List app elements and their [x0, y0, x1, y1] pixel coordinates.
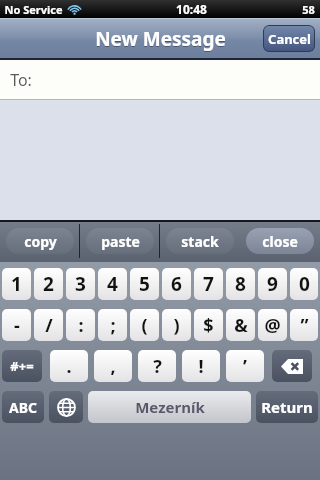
staticText: 7 [203, 271, 214, 297]
staticText: 2 [43, 271, 54, 297]
button[interactable]: @ [258, 309, 287, 341]
button[interactable]: stack [160, 224, 240, 258]
staticText: 3 [75, 271, 86, 297]
button[interactable]: Return [256, 391, 318, 423]
staticText: 58 [302, 2, 315, 17]
staticText: ( [141, 313, 148, 338]
staticText: ABC [9, 398, 37, 417]
button[interactable]: $ [194, 309, 223, 341]
button[interactable]: Cancel [263, 25, 315, 52]
button[interactable]: 4 [98, 268, 127, 300]
staticText: Return [261, 397, 313, 417]
staticText: & [234, 313, 248, 338]
staticText: 4 [107, 271, 118, 297]
staticText: New Message [95, 27, 226, 53]
button[interactable]: : [66, 309, 95, 341]
staticText: stack [181, 232, 219, 251]
button[interactable]: . [50, 350, 88, 382]
button[interactable]: 3 [66, 268, 95, 300]
staticText: No Service [4, 2, 63, 17]
button[interactable]: / [34, 309, 63, 341]
staticText: ? [153, 354, 162, 379]
staticText: 10:48 [176, 1, 207, 17]
staticText: 5 [139, 271, 150, 297]
staticText: - [14, 313, 20, 338]
button[interactable]: 7 [194, 268, 223, 300]
button[interactable]: Backspace [272, 350, 312, 382]
staticText: ’ [243, 354, 247, 379]
staticText: 6 [171, 271, 182, 297]
button[interactable]: 9 [258, 268, 287, 300]
button[interactable]: close [240, 224, 320, 258]
staticText: ; [110, 313, 116, 338]
button[interactable]: To: [0, 60, 320, 100]
staticText: $ [203, 313, 214, 338]
button[interactable]: 1 [2, 268, 31, 300]
button[interactable]: #+= [2, 350, 42, 382]
button[interactable]: ABC [2, 391, 44, 423]
staticText: ” [300, 313, 309, 338]
button[interactable]: ” [290, 309, 318, 341]
staticText: 8 [235, 271, 246, 297]
staticText: , [110, 354, 116, 379]
button[interactable]: paste [80, 224, 160, 258]
button[interactable]: ’ [226, 350, 264, 382]
button[interactable]: , [94, 350, 132, 382]
button[interactable]: ( [130, 309, 159, 341]
button[interactable]: ! [182, 350, 220, 382]
button[interactable]: Mezerník [88, 391, 251, 423]
staticText: 0 [299, 271, 310, 297]
staticText: close [262, 232, 298, 251]
button[interactable]: 2 [34, 268, 63, 300]
staticText: / [45, 313, 53, 338]
staticText: To: [10, 69, 32, 91]
staticText: copy [24, 232, 57, 251]
staticText: ) [173, 313, 180, 338]
staticText: 9 [267, 271, 278, 297]
button[interactable]: 8 [226, 268, 255, 300]
button[interactable]: copy [0, 224, 80, 258]
button[interactable]: ? [138, 350, 176, 382]
staticText: #+= [10, 357, 34, 375]
button[interactable]: 6 [162, 268, 191, 300]
button[interactable]: Change keyboard language [49, 391, 83, 423]
staticText: ! [198, 354, 204, 379]
button[interactable]: 5 [130, 268, 159, 300]
staticText: @ [264, 313, 281, 338]
staticText: 1 [11, 271, 22, 297]
button[interactable]: ; [98, 309, 127, 341]
staticText: Cancel [268, 30, 311, 48]
staticText: paste [101, 232, 140, 251]
button[interactable]: - [2, 309, 31, 341]
button[interactable]: 0 [290, 268, 318, 300]
button[interactable]: ) [162, 309, 191, 341]
staticText: New Message [95, 26, 226, 52]
button[interactable]: & [226, 309, 255, 341]
staticText: Mezerník [135, 397, 205, 417]
staticText: : [78, 313, 84, 338]
staticText: . [66, 354, 72, 379]
